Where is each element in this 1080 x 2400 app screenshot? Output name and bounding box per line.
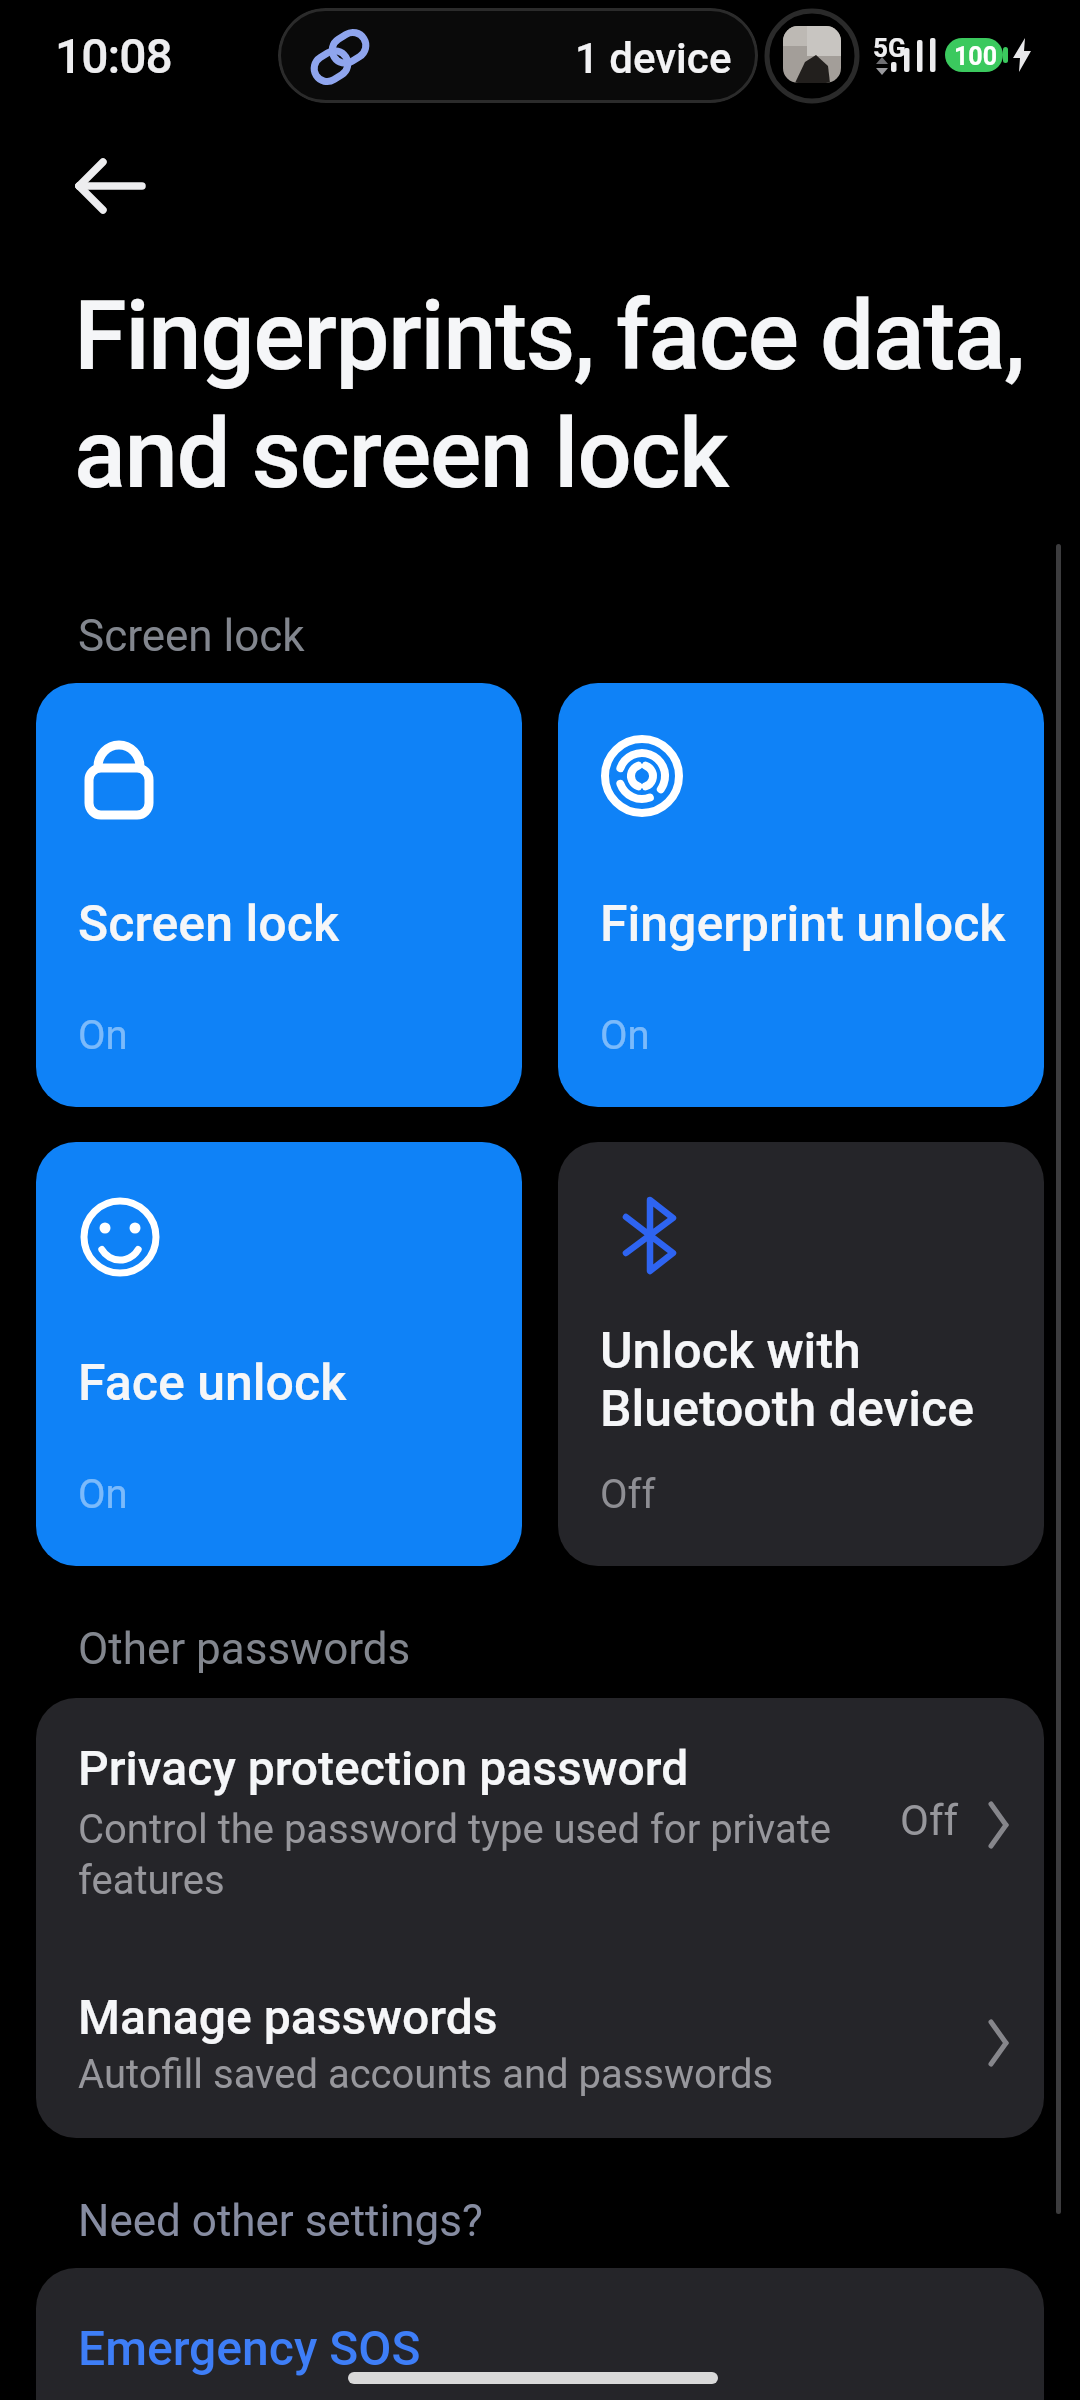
button[interactable]: Face unlock xyxy=(36,1142,522,1566)
staticText: and screen lock xyxy=(74,398,728,511)
staticText: Manage passwords xyxy=(78,1989,498,2045)
staticText: Off xyxy=(900,1796,959,1845)
staticText: 1 device xyxy=(575,34,732,83)
staticText: 5G xyxy=(873,33,906,63)
staticText: Need other settings? xyxy=(78,2195,483,2247)
staticText: Unlock with Bluetooth device xyxy=(600,1322,975,1438)
staticText: Autofill saved accounts and passwords xyxy=(78,2051,774,2098)
button[interactable]: Emergency SOS xyxy=(36,2268,1044,2400)
staticText: Screen lock xyxy=(78,895,339,954)
staticText: On xyxy=(600,1012,650,1059)
staticText: 10:08 xyxy=(55,28,172,84)
staticText: Screen lock xyxy=(78,610,305,662)
staticText: Fingerprint unlock xyxy=(600,895,1006,954)
button[interactable]: Fingerprint unlock xyxy=(558,683,1044,1107)
staticText: On xyxy=(78,1012,128,1059)
staticText: Off xyxy=(600,1471,656,1518)
button[interactable]: Screen lock xyxy=(36,683,522,1107)
button[interactable]: Unlock with Bluetooth device xyxy=(558,1142,1044,1566)
staticText: Control the password type used for priva… xyxy=(78,1806,832,1903)
staticText: 100 xyxy=(954,42,998,71)
staticText: Other passwords xyxy=(78,1623,411,1675)
staticText: Emergency SOS xyxy=(78,2320,421,2376)
button[interactable]: 1 device xyxy=(278,8,758,103)
staticText: Privacy protection password xyxy=(78,1740,689,1796)
staticText: Fingerprints, face data, xyxy=(74,280,1024,393)
button[interactable] xyxy=(60,146,160,226)
button[interactable]: Privacy protection password xyxy=(36,1698,1044,1923)
button[interactable]: Manage passwords xyxy=(36,1923,1044,2138)
staticText: On xyxy=(78,1471,128,1518)
staticText: Face unlock xyxy=(78,1354,347,1413)
